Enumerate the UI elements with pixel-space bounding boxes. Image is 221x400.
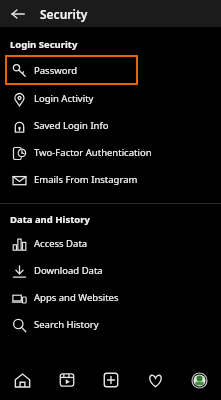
staticText: Search History (34, 318, 99, 331)
button[interactable]: Profile (177, 360, 221, 400)
button[interactable]: Two-Factor Authentication (0, 139, 221, 166)
staticText: Security (40, 6, 88, 22)
staticText: Login Activity (34, 92, 94, 105)
staticText: Data and History (10, 213, 90, 226)
staticText: Saved Login Info (34, 119, 109, 132)
button[interactable]: Login Activity (0, 85, 221, 112)
button[interactable]: Search History (0, 311, 221, 338)
button[interactable]: Access Data (0, 230, 221, 257)
button[interactable]: Saved Login Info (0, 112, 221, 139)
button[interactable]: Activity (133, 360, 177, 400)
staticText: Password (34, 64, 77, 77)
button[interactable]: Password (5, 55, 138, 85)
button[interactable]: Emails From Instagram (0, 166, 221, 193)
staticText: Download Data (34, 264, 103, 277)
staticText: Login Security (10, 38, 78, 51)
staticText: Access Data (34, 237, 88, 250)
button[interactable]: Apps and Websites (0, 284, 221, 311)
button[interactable]: Create (89, 360, 133, 400)
button[interactable]: Back (6, 2, 30, 26)
button[interactable]: Home (0, 360, 45, 400)
button[interactable]: Reels (45, 360, 89, 400)
staticText: Apps and Websites (34, 291, 119, 304)
staticText: Emails From Instagram (34, 173, 138, 186)
button[interactable]: Download Data (0, 257, 221, 284)
staticText: Two-Factor Authentication (34, 146, 152, 159)
